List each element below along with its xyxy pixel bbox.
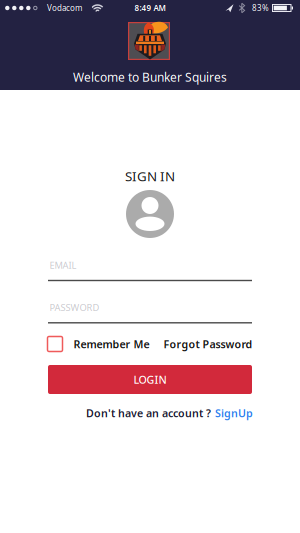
staticText: Forgot Password (163, 337, 252, 351)
staticText: SIGN IN (125, 167, 175, 185)
staticText: SignUp (215, 406, 253, 420)
staticText: 8:49 AM (134, 3, 165, 13)
staticText: Welcome to Bunker Squires (73, 69, 227, 85)
button[interactable]: SignUp (215, 406, 253, 420)
button[interactable]: Remember Me (47, 336, 149, 351)
staticText: Vodacom (47, 3, 82, 13)
staticText: Remember Me (73, 337, 149, 351)
staticText: PASSWORD (49, 301, 99, 314)
staticText: Don't have an account ? (86, 406, 211, 420)
button[interactable]: Email (48, 255, 252, 281)
button[interactable]: LOGIN (48, 365, 252, 394)
staticText: 83% (252, 3, 269, 13)
button[interactable]: Password (48, 297, 252, 323)
staticText: EMAIL (49, 259, 76, 271)
button[interactable]: Forgot Password (163, 337, 252, 351)
staticText: LOGIN (133, 372, 166, 387)
